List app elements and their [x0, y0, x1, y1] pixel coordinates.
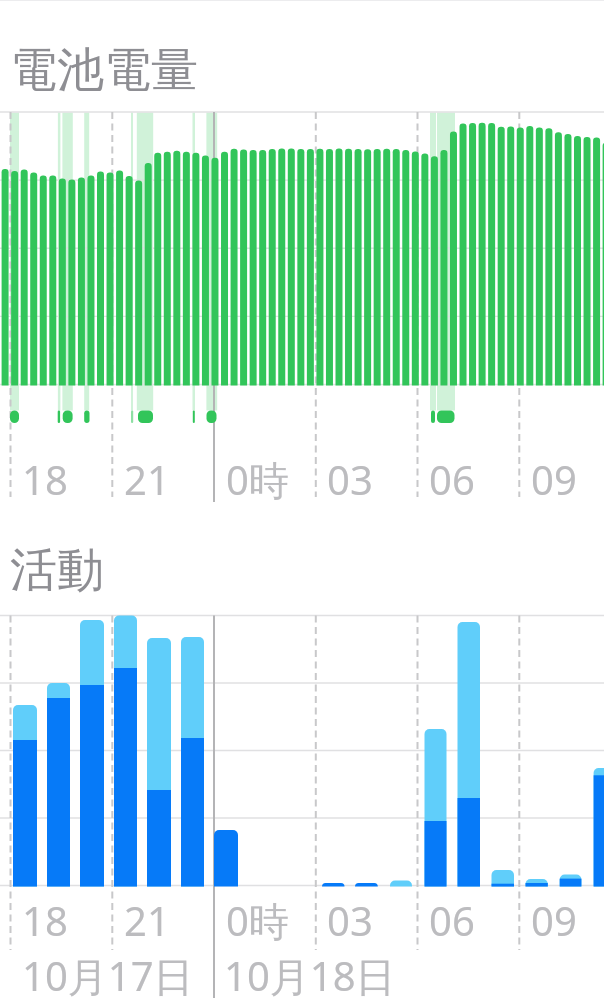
staticText: 06: [429, 893, 475, 947]
staticText: 09: [531, 452, 577, 506]
staticText: 06: [429, 452, 475, 506]
staticText: 09: [531, 893, 577, 947]
staticText: 18: [22, 452, 68, 506]
staticText: 21: [124, 452, 170, 506]
staticText: 0時: [226, 452, 289, 507]
staticText: 03: [327, 452, 373, 506]
staticText: 10月18日: [224, 948, 396, 1003]
staticText: 活動: [10, 541, 104, 600]
staticText: 0時: [226, 893, 289, 948]
staticText: 10月17日: [22, 948, 194, 1003]
staticText: 18: [22, 893, 68, 947]
staticText: 21: [124, 893, 170, 947]
staticText: 電池電量: [10, 41, 198, 100]
staticText: 03: [327, 893, 373, 947]
